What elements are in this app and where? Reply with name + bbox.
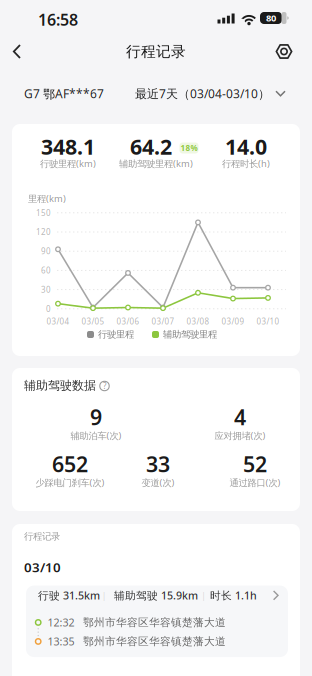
button[interactable]: Settings <box>271 40 297 62</box>
staticText: 90 <box>41 246 51 256</box>
staticText: 80 <box>266 12 276 24</box>
staticText: 时长 1.1h <box>210 588 257 602</box>
staticText: 行程记录 <box>24 531 60 542</box>
staticText: 里程(km) <box>28 192 66 205</box>
staticText: 652 <box>52 450 88 478</box>
staticText: 最近7天（03/04-03/10） <box>135 85 270 101</box>
staticText: 60 <box>41 265 51 276</box>
staticText: 辅助驾驶 15.9km <box>114 588 198 602</box>
staticText: | <box>101 589 106 602</box>
staticText: 03/05 <box>81 316 104 327</box>
staticText: 348.1 <box>41 132 95 161</box>
staticText: 18% <box>180 143 197 153</box>
staticText: | <box>201 589 206 602</box>
staticText: 鄂州市华容区华容镇楚藩大道 <box>83 616 226 629</box>
button[interactable]: G7 鄂AF***67 <box>24 84 144 102</box>
staticText: 鄂州市华容区华容镇楚藩大道 <box>83 635 226 648</box>
staticText: 少踩电门刹车(次) <box>35 476 104 489</box>
staticText: 16:58 <box>38 9 78 30</box>
staticText: 64.2 <box>130 132 172 161</box>
staticText: 03/04 <box>46 316 69 327</box>
button[interactable]: Help <box>97 379 111 393</box>
staticText: 0 <box>46 303 51 314</box>
staticText: 行驶里程 <box>98 329 134 340</box>
staticText: 120 <box>36 227 51 237</box>
staticText: 30 <box>41 284 51 295</box>
staticText: 变道(次) <box>141 476 174 489</box>
button[interactable]: 行驶 31.5km <box>26 585 288 657</box>
staticText: 辅助泊车(次) <box>70 429 121 442</box>
staticText: 03/06 <box>116 316 139 327</box>
staticText: 33 <box>146 450 170 478</box>
staticText: 4 <box>234 403 246 431</box>
staticText: G7 鄂AF***67 <box>24 85 104 101</box>
staticText: 12:32 <box>47 615 74 630</box>
staticText: 辅助驾驶数据 <box>24 378 96 393</box>
staticText: ? <box>103 381 106 391</box>
staticText: 行程时长(h) <box>222 157 270 170</box>
button[interactable]: Back <box>8 40 38 62</box>
staticText: 辅助驾驶里程(km) <box>119 157 193 170</box>
staticText: 行驶里程(km) <box>40 157 96 170</box>
staticText: 行程记录 <box>126 42 186 60</box>
staticText: 行驶 31.5km <box>38 588 100 602</box>
staticText: 14.0 <box>225 132 267 161</box>
staticText: 03/10 <box>256 316 279 327</box>
button[interactable]: 最近7天（03/04-03/10） <box>106 84 286 102</box>
staticText: 应对拥堵(次) <box>214 429 265 442</box>
staticText: 辅助驾驶里程 <box>163 329 217 340</box>
staticText: 9 <box>90 403 102 431</box>
staticText: 13:35 <box>47 634 74 649</box>
staticText: 通过路口(次) <box>229 476 280 489</box>
staticText: 03/08 <box>186 316 209 327</box>
staticText: 03/07 <box>151 316 174 327</box>
staticText: 03/09 <box>221 316 244 327</box>
staticText: 03/10 <box>24 558 61 576</box>
staticText: 150 <box>36 207 51 218</box>
staticText: 52 <box>243 450 267 478</box>
